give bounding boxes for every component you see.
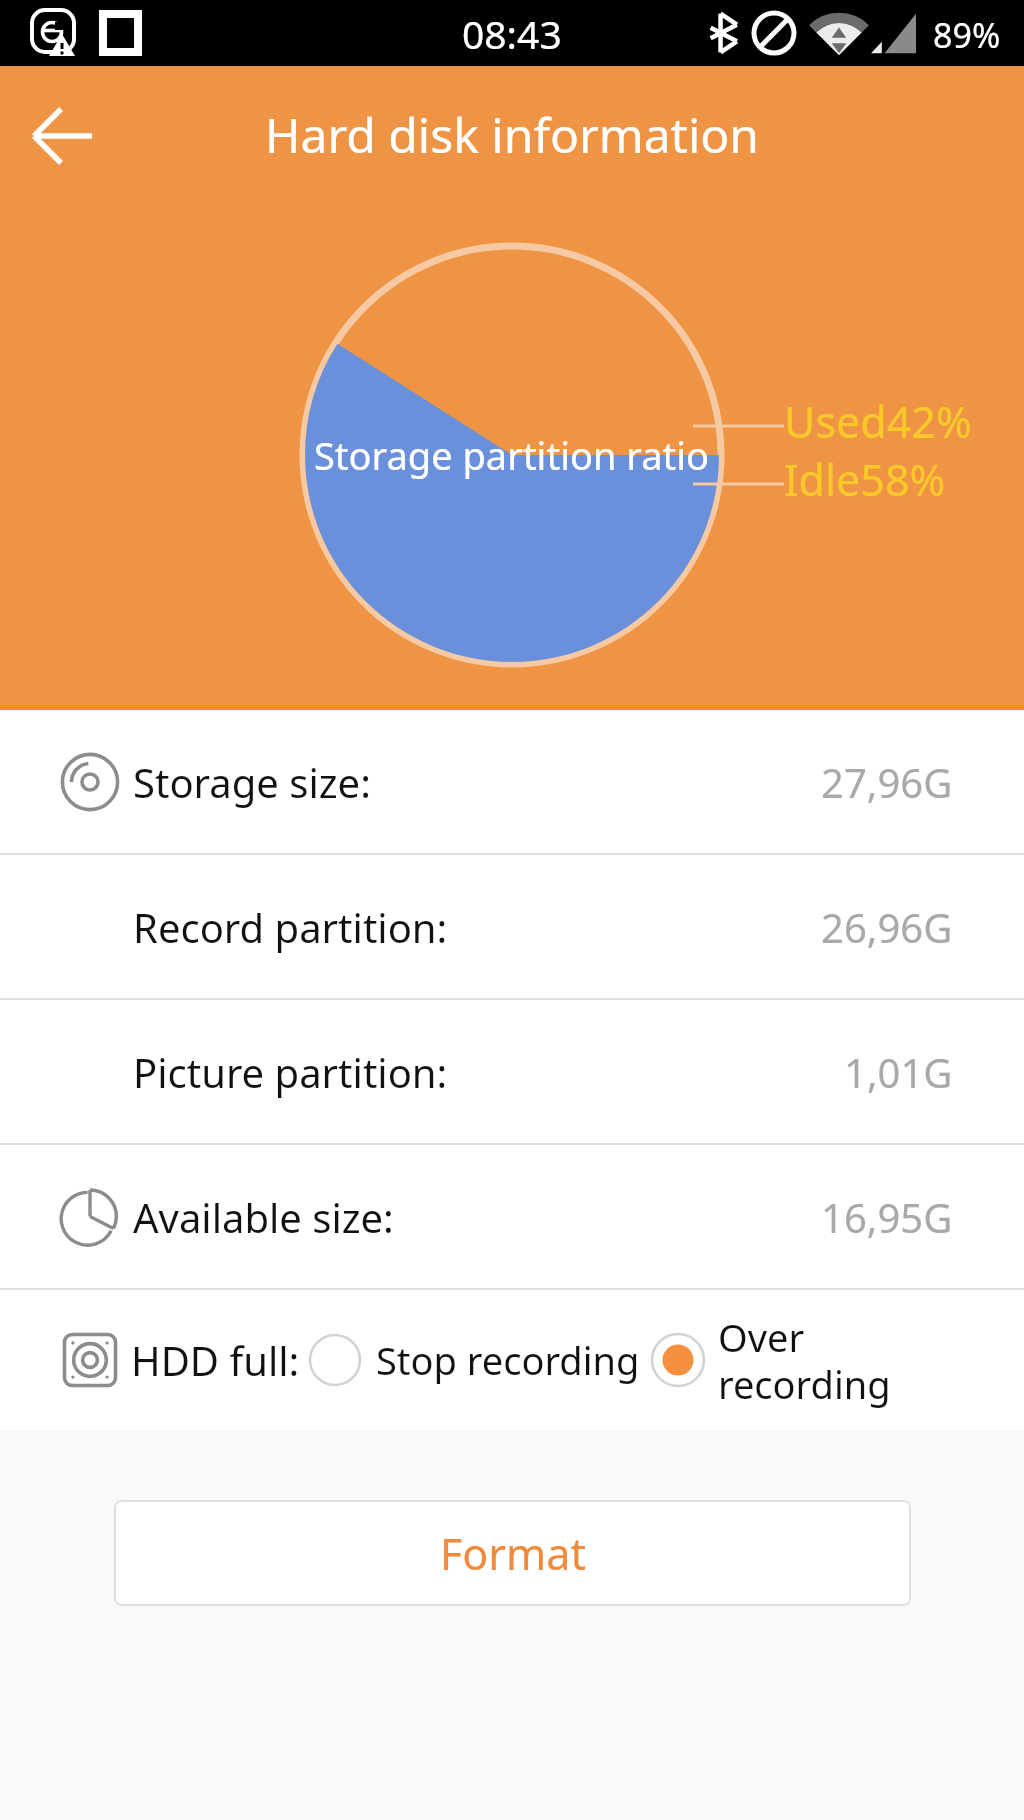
staticText: Hard disk information (0, 102, 1024, 167)
button[interactable]: Stop recording (308, 1308, 640, 1412)
staticText: Idle58% (784, 450, 946, 509)
staticText: HDD full: (131, 1333, 300, 1387)
staticText: 26,96G (821, 900, 953, 954)
staticText: 1,01G (844, 1045, 953, 1099)
staticText: Stop recording (376, 1334, 640, 1386)
button[interactable]: Available size: (0, 1145, 1024, 1288)
button[interactable]: Picture partition: (0, 1000, 1024, 1143)
button[interactable]: Storage size: (0, 710, 1024, 853)
staticText: 89% (933, 12, 1001, 58)
button[interactable]: Over recording (651, 1304, 891, 1416)
staticText: Storage size: (133, 755, 371, 809)
staticText: Used42% (784, 392, 972, 451)
staticText: 08:43 (462, 7, 562, 60)
button[interactable]: Record partition: (0, 855, 1024, 998)
staticText: 27,96G (821, 755, 953, 809)
staticText: Picture partition: (133, 1045, 448, 1099)
staticText: Format (440, 1524, 586, 1583)
staticText: 16,95G (821, 1190, 953, 1244)
staticText: Storage partition ratio (314, 429, 710, 481)
staticText: Available size: (133, 1190, 394, 1244)
staticText: Over recording (718, 1311, 891, 1410)
button[interactable]: Format (114, 1500, 911, 1606)
staticText: Record partition: (133, 900, 448, 954)
button[interactable]: Back (14, 96, 112, 176)
